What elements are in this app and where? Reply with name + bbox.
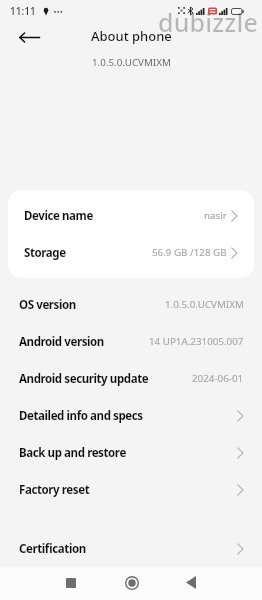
button[interactable]: Factory reset — [0, 471, 262, 508]
staticText: nasir — [204, 209, 227, 222]
staticText: Storage — [24, 245, 66, 261]
staticText: Device name — [24, 208, 93, 224]
button[interactable]: Recents — [57, 569, 84, 596]
staticText: Android security update — [19, 371, 149, 387]
staticText: About phone — [91, 27, 172, 45]
button[interactable]: Back up and restore — [0, 434, 262, 471]
staticText: 1.0.5.0.UCVMIXM — [92, 56, 171, 69]
button[interactable]: Back — [177, 569, 204, 596]
button[interactable]: Home — [118, 569, 145, 596]
staticText: 1.0.5.0.UCVMIXM — [165, 298, 244, 311]
staticText: 14 UP1A.231005.007 — [149, 335, 244, 348]
button[interactable]: Device name — [8, 197, 254, 234]
button[interactable]: OS version — [0, 286, 262, 323]
staticText: 56.9 GB /128 GB — [152, 246, 227, 259]
staticText: dubizzle — [158, 5, 258, 39]
staticText: 2024-06-01 — [192, 372, 244, 385]
staticText: OS version — [19, 297, 76, 313]
button[interactable]: Storage — [8, 234, 254, 271]
staticText: Detailed info and specs — [19, 408, 143, 424]
button[interactable]: Detailed info and specs — [0, 397, 262, 434]
staticText: Android version — [19, 334, 104, 350]
button[interactable]: Android version — [0, 323, 262, 360]
staticText: 11:11 — [10, 4, 36, 18]
staticText: Factory reset — [19, 482, 90, 498]
button[interactable]: Certification — [0, 530, 262, 567]
button[interactable]: Back — [16, 24, 42, 50]
staticText: Back up and restore — [19, 445, 126, 461]
button[interactable]: Android security update — [0, 360, 262, 397]
staticText: Certification — [19, 541, 86, 557]
